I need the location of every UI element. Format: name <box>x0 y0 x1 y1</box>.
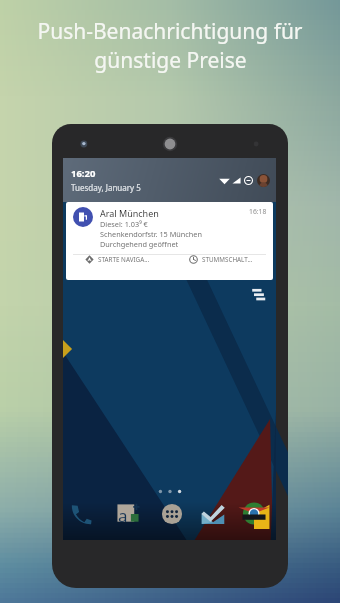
staticText: a <box>118 504 128 527</box>
staticText: Diesel: 1.03⁹ € <box>100 219 148 229</box>
staticText: STARTE NAVIGA... <box>98 255 150 264</box>
staticText: Schenkendorfstr. 15 München <box>100 229 202 239</box>
staticText: Durchgehend geöffnet <box>100 239 179 249</box>
button[interactable]: Translate <box>116 502 140 526</box>
button[interactable]: Aral München <box>66 202 273 280</box>
button[interactable]: All apps <box>160 502 184 526</box>
button[interactable]: Chrome <box>242 502 266 526</box>
staticText: STUMMSCHALT... <box>202 255 253 264</box>
button[interactable]: STARTE NAVIGA... <box>66 255 169 264</box>
staticText: günstige Preise <box>94 46 247 75</box>
staticText: Tuesday, January 5 <box>71 182 141 193</box>
button[interactable]: Inbox <box>201 502 225 526</box>
staticText: 16:18 <box>249 207 267 216</box>
staticText: 16:20 <box>71 167 96 180</box>
button[interactable]: STUMMSCHALT... <box>169 255 273 264</box>
staticText: Push-Benachrichtigung für <box>37 17 303 46</box>
button[interactable]: Phone <box>69 502 93 526</box>
staticText: Aral München <box>100 207 159 219</box>
